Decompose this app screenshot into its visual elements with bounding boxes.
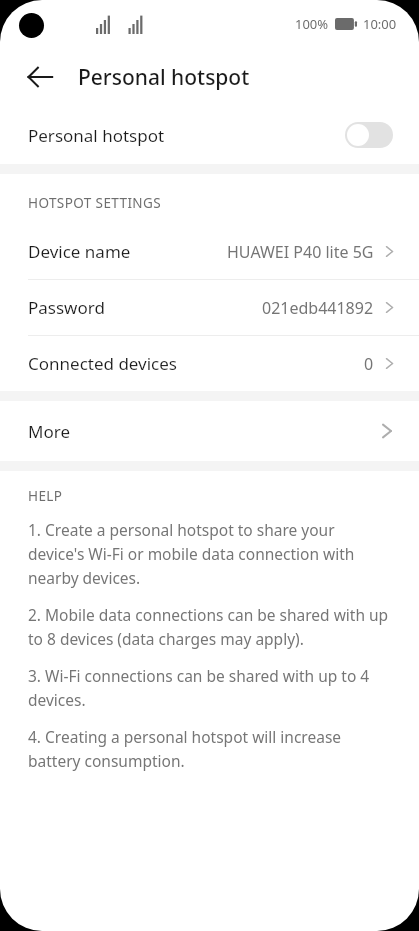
- button[interactable]: More: [0, 401, 419, 461]
- staticText: More: [28, 420, 70, 443]
- staticText: HUAWEI P40 lite 5G: [227, 241, 374, 263]
- staticText: HELP: [28, 487, 63, 505]
- staticText: 1. Create a personal hotspot to share yo…: [28, 519, 389, 588]
- staticText: 100%: [295, 15, 329, 33]
- staticText: 4. Creating a personal hotspot will incr…: [28, 726, 389, 771]
- button[interactable]: Connected devices: [0, 336, 419, 391]
- staticText: Personal hotspot: [28, 124, 165, 147]
- button[interactable]: Device name: [0, 224, 419, 279]
- staticText: HOTSPOT SETTINGS: [28, 194, 162, 212]
- staticText: Password: [28, 296, 105, 319]
- staticText: 0: [364, 353, 374, 375]
- button[interactable]: Personal hotspot: [0, 106, 419, 164]
- staticText: 10:00: [363, 15, 397, 33]
- staticText: Personal hotspot: [78, 63, 250, 92]
- staticText: Device name: [28, 240, 131, 263]
- staticText: 2. Mobile data connections can be shared…: [28, 604, 389, 649]
- staticText: Connected devices: [28, 352, 178, 375]
- staticText: 3. Wi-Fi connections can be shared with …: [28, 665, 389, 710]
- button[interactable]: Password: [0, 280, 419, 335]
- button[interactable]: Back: [18, 55, 62, 99]
- staticText: 021edb441892: [262, 297, 374, 319]
